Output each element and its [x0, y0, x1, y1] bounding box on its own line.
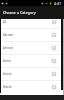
other: Select [51, 19, 57, 25]
other: Select [51, 71, 57, 77]
other: Select [51, 58, 57, 64]
staticText: Anime [3, 59, 12, 63]
other: Select [51, 32, 57, 38]
staticText: Choose a Category [3, 10, 36, 15]
button[interactable]: Animals [0, 42, 64, 54]
staticText: Animals [3, 46, 14, 50]
button[interactable]: Artistic [0, 68, 64, 80]
other: Select [51, 84, 57, 90]
staticText: All [3, 20, 7, 24]
button[interactable]: Anime [0, 55, 64, 67]
staticText: Abstract [3, 33, 14, 37]
button[interactable]: Abstract [0, 29, 64, 41]
other: Select [51, 45, 57, 51]
button[interactable]: All [0, 19, 64, 28]
staticText: Brands [3, 85, 12, 89]
staticText: Artistic [3, 72, 12, 76]
staticText: 4:41 [54, 1, 62, 6]
button[interactable]: Brands [0, 81, 64, 92]
